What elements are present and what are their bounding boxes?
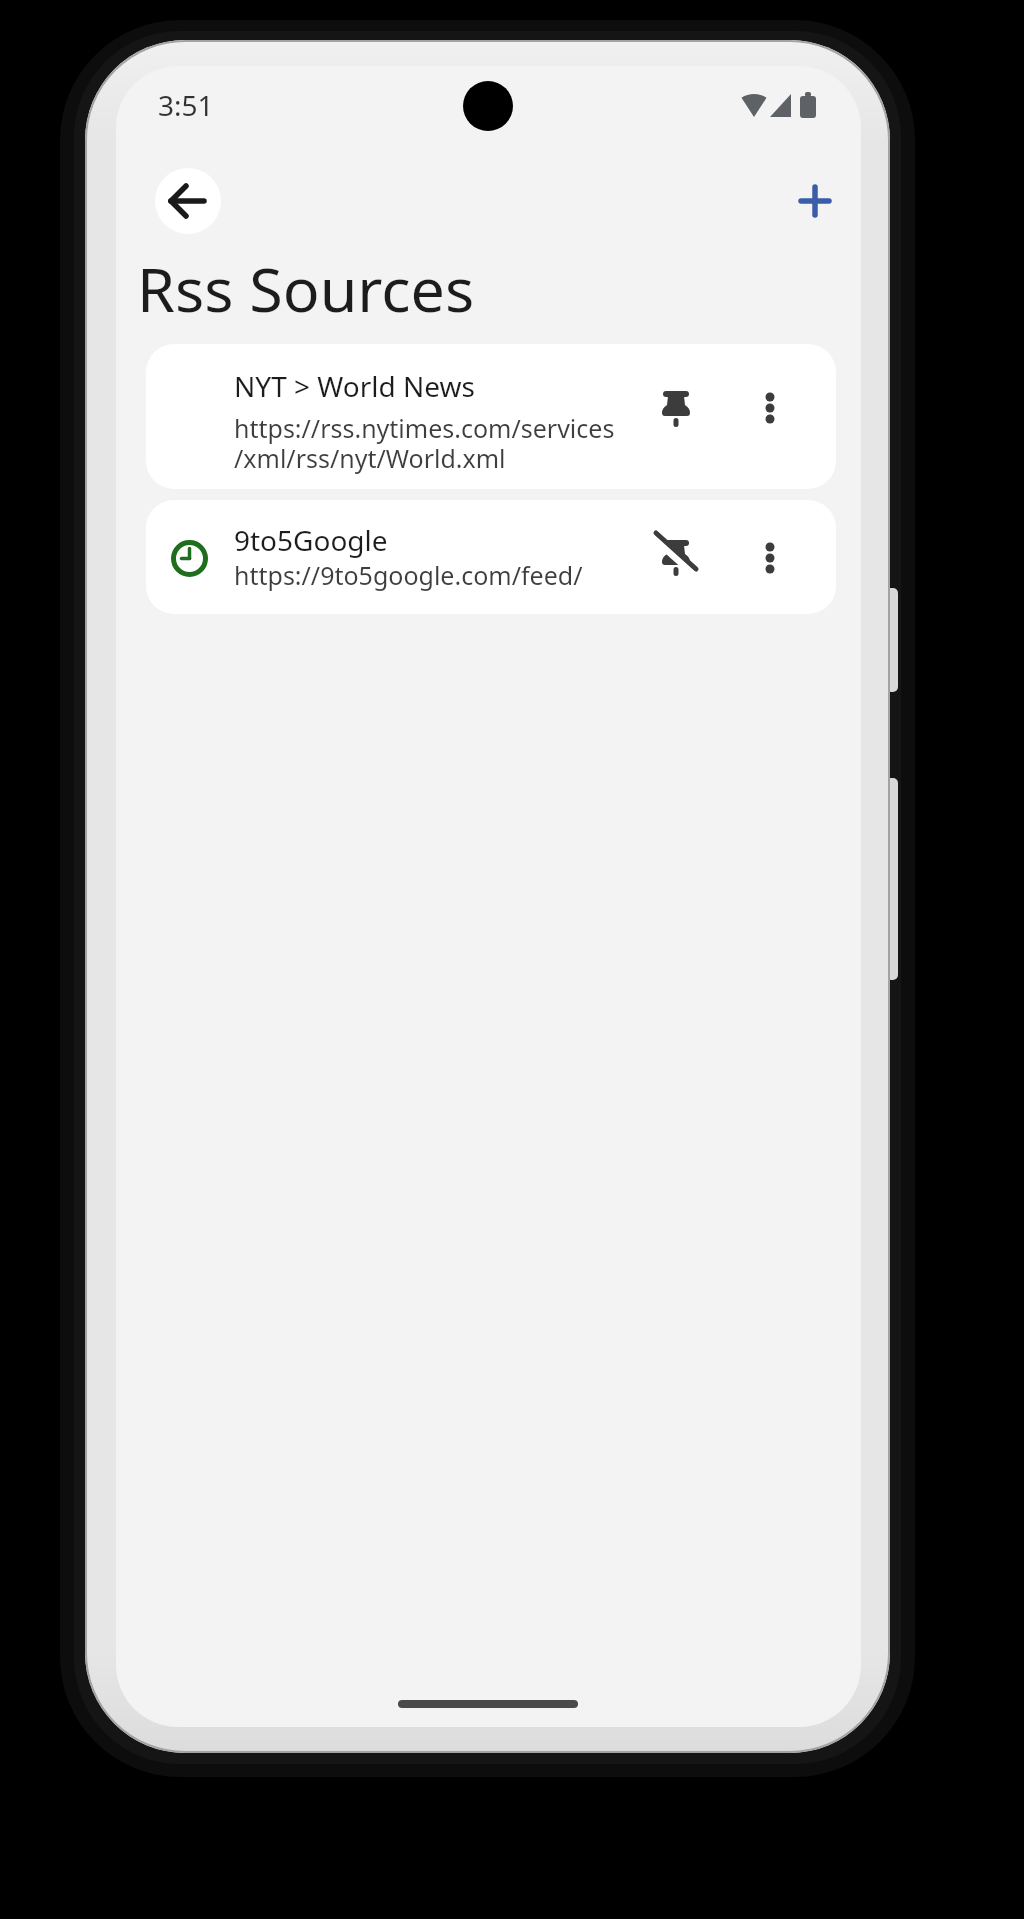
staticText: https://9to5google.com/feed/ xyxy=(234,558,583,592)
staticText: NYT > World News xyxy=(234,367,475,405)
button[interactable] xyxy=(746,373,794,441)
button[interactable]: NYT > World News xyxy=(146,344,836,489)
button[interactable] xyxy=(787,173,843,229)
staticText: https://rss.nytimes.com/services xyxy=(234,411,615,445)
staticText: /xml/rss/nyt/World.xml xyxy=(234,441,506,475)
button[interactable] xyxy=(652,384,700,432)
button[interactable]: 9to5Google xyxy=(146,500,836,614)
button[interactable] xyxy=(746,523,794,591)
button[interactable] xyxy=(155,168,221,234)
button[interactable] xyxy=(652,533,700,581)
staticText: 9to5Google xyxy=(234,521,388,559)
staticText: Rss Sources xyxy=(137,247,475,330)
staticText: 3:51 xyxy=(158,86,214,124)
